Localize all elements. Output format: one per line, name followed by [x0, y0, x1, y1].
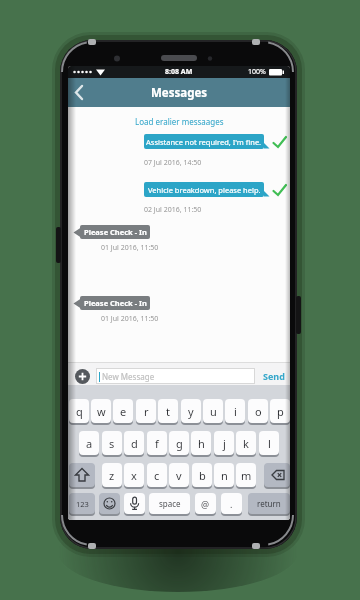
- button[interactable]: f: [147, 431, 167, 455]
- button[interactable]: [99, 493, 120, 514]
- staticText: 02 Jul 2016, 11:50: [144, 205, 202, 215]
- staticText: Please Check - In: [84, 227, 147, 237]
- staticText: s: [109, 436, 115, 451]
- staticText: c: [154, 468, 160, 483]
- staticText: u: [210, 404, 217, 419]
- button[interactable]: i: [225, 399, 245, 423]
- staticText: Vehicle breakdown, please help.: [148, 185, 261, 195]
- button[interactable]: q: [69, 399, 89, 423]
- button[interactable]: Vehicle breakdown, please help.: [144, 182, 264, 197]
- staticText: return: [257, 498, 281, 509]
- staticText: Load eralier messaages: [135, 116, 224, 127]
- button[interactable]: [75, 369, 90, 384]
- staticText: v: [176, 468, 182, 483]
- staticText: m: [241, 468, 252, 483]
- button[interactable]: 123: [69, 493, 95, 514]
- button[interactable]: m: [236, 463, 256, 487]
- staticText: i: [234, 404, 237, 419]
- button[interactable]: r: [136, 399, 156, 423]
- staticText: j: [223, 436, 226, 451]
- button[interactable]: return: [248, 493, 290, 514]
- staticText: Messages: [151, 85, 208, 101]
- staticText: e: [120, 404, 127, 419]
- button[interactable]: @: [195, 493, 216, 514]
- staticText: y: [188, 404, 194, 419]
- staticText: n: [221, 468, 228, 483]
- button[interactable]: .: [221, 493, 242, 514]
- button[interactable]: p: [270, 399, 290, 423]
- staticText: Send: [263, 370, 285, 382]
- staticText: Please Check - In: [84, 298, 147, 308]
- button[interactable]: Load eralier messaages: [68, 114, 290, 128]
- staticText: b: [199, 468, 206, 483]
- button[interactable]: j: [214, 431, 234, 455]
- button[interactable]: Please Check - In: [80, 225, 150, 239]
- staticText: 01 Jul 2016, 11:50: [101, 243, 159, 253]
- staticText: p: [277, 404, 284, 419]
- staticText: f: [155, 436, 159, 451]
- button[interactable]: New Message: [96, 368, 255, 384]
- staticText: r: [144, 404, 149, 419]
- staticText: d: [131, 436, 138, 451]
- staticText: z: [109, 468, 115, 483]
- button[interactable]: [124, 493, 145, 514]
- button[interactable]: h: [191, 431, 211, 455]
- staticText: New Message: [102, 371, 155, 382]
- staticText: 100%: [248, 67, 266, 77]
- button[interactable]: Send: [258, 368, 290, 384]
- button[interactable]: w: [91, 399, 111, 423]
- staticText: Assistance not required, I'm fine.: [146, 137, 262, 147]
- staticText: 07 Jul 2016, 14:50: [144, 158, 202, 168]
- staticText: @: [201, 498, 210, 510]
- staticText: o: [255, 404, 262, 419]
- staticText: 123: [76, 499, 89, 509]
- button[interactable]: [69, 463, 95, 487]
- staticText: k: [243, 436, 249, 451]
- staticText: l: [268, 436, 271, 451]
- button[interactable]: y: [181, 399, 201, 423]
- button[interactable]: c: [147, 463, 167, 487]
- button[interactable]: g: [169, 431, 189, 455]
- button[interactable]: t: [158, 399, 178, 423]
- button[interactable]: o: [248, 399, 268, 423]
- button[interactable]: e: [113, 399, 133, 423]
- button[interactable]: [264, 463, 290, 487]
- staticText: q: [76, 404, 83, 419]
- button[interactable]: x: [124, 463, 144, 487]
- button[interactable]: b: [192, 463, 212, 487]
- staticText: 01 Jul 2016, 11:50: [101, 314, 159, 324]
- staticText: t: [166, 404, 170, 419]
- button[interactable]: space: [149, 493, 190, 514]
- button[interactable]: d: [124, 431, 144, 455]
- button[interactable]: Messages: [68, 78, 290, 107]
- button[interactable]: k: [236, 431, 256, 455]
- button[interactable]: Assistance not required, I'm fine.: [144, 134, 264, 149]
- button[interactable]: u: [203, 399, 223, 423]
- staticText: x: [131, 468, 137, 483]
- staticText: a: [86, 436, 93, 451]
- button[interactable]: z: [102, 463, 122, 487]
- button[interactable]: v: [169, 463, 189, 487]
- staticText: w: [97, 404, 106, 419]
- staticText: .: [230, 498, 233, 510]
- staticText: g: [176, 436, 183, 451]
- button[interactable]: a: [79, 431, 99, 455]
- staticText: space: [159, 498, 181, 509]
- staticText: 8:08 AM: [165, 67, 193, 77]
- staticText: h: [198, 436, 205, 451]
- button[interactable]: s: [102, 431, 122, 455]
- button[interactable]: n: [214, 463, 234, 487]
- button[interactable]: Please Check - In: [80, 296, 150, 310]
- button[interactable]: l: [259, 431, 279, 455]
